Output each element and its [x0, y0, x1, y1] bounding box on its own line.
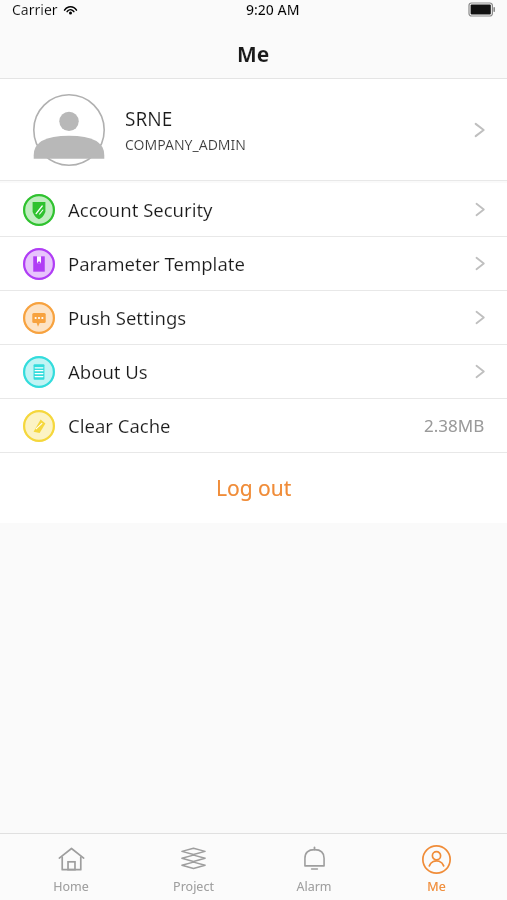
staticText: Push Settings — [68, 305, 475, 330]
button[interactable]: Parameter Template — [0, 237, 507, 290]
staticText: Carrier — [12, 0, 58, 19]
staticText: Parameter Template — [68, 251, 475, 276]
staticText: About Us — [68, 359, 475, 384]
button[interactable]: SRNE — [0, 79, 507, 180]
staticText: Home — [53, 878, 89, 895]
staticText: Alarm — [296, 878, 332, 895]
other: Alarm — [300, 845, 329, 874]
staticText: 9:20 AM — [246, 0, 300, 19]
staticText: Account Security — [68, 197, 475, 222]
button[interactable]: About Us — [0, 345, 507, 398]
button[interactable]: Me — [386, 839, 486, 895]
staticText: SRNE — [125, 106, 173, 132]
button[interactable]: Account Security — [0, 183, 507, 236]
button[interactable]: Alarm — [264, 839, 364, 895]
staticText: COMPANY_ADMIN — [125, 135, 246, 154]
staticText: Me — [237, 40, 270, 69]
button[interactable]: Project — [143, 839, 243, 895]
staticText: Me — [427, 878, 446, 895]
button[interactable]: Clear Cache — [0, 399, 507, 452]
button[interactable]: Push Settings — [0, 291, 507, 344]
staticText: 2.38MB — [424, 414, 485, 437]
other: Project — [179, 845, 208, 874]
staticText: Project — [173, 878, 214, 895]
staticText: Log out — [216, 474, 292, 503]
staticText: Clear Cache — [68, 413, 424, 438]
other: Home — [57, 845, 86, 874]
other: Me — [422, 845, 451, 874]
button[interactable]: Log out — [0, 453, 507, 523]
button[interactable]: Home — [21, 839, 121, 895]
